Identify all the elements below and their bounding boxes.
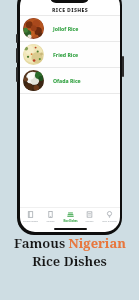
button[interactable]: Tips & Tricks (100, 207, 119, 225)
staticText: Jollof Rice (53, 25, 79, 32)
staticText: Others (85, 219, 94, 222)
button[interactable]: Rice Dishes (61, 207, 80, 225)
button[interactable]: Ofada Rice (20, 68, 120, 93)
button[interactable]: Fried Rice (20, 42, 120, 67)
staticText: Ofada Rice (53, 77, 81, 84)
staticText: RICE DISHES (52, 6, 89, 13)
button[interactable]: Others (80, 207, 99, 225)
staticText: Soups/Stews (23, 219, 38, 222)
staticText: Tips & Tricks (102, 219, 117, 222)
staticText: Famous Nigerian (14, 234, 126, 252)
staticText: Fried Rice (53, 51, 79, 58)
button[interactable]: Snacks (41, 207, 60, 225)
button[interactable]: Jollof Rice (20, 16, 120, 41)
button[interactable]: Soups/Stews (21, 207, 40, 225)
staticText: Rice Dishes (32, 252, 107, 270)
staticText: Snacks (46, 219, 55, 222)
staticText: Rice Dishes (63, 219, 78, 222)
